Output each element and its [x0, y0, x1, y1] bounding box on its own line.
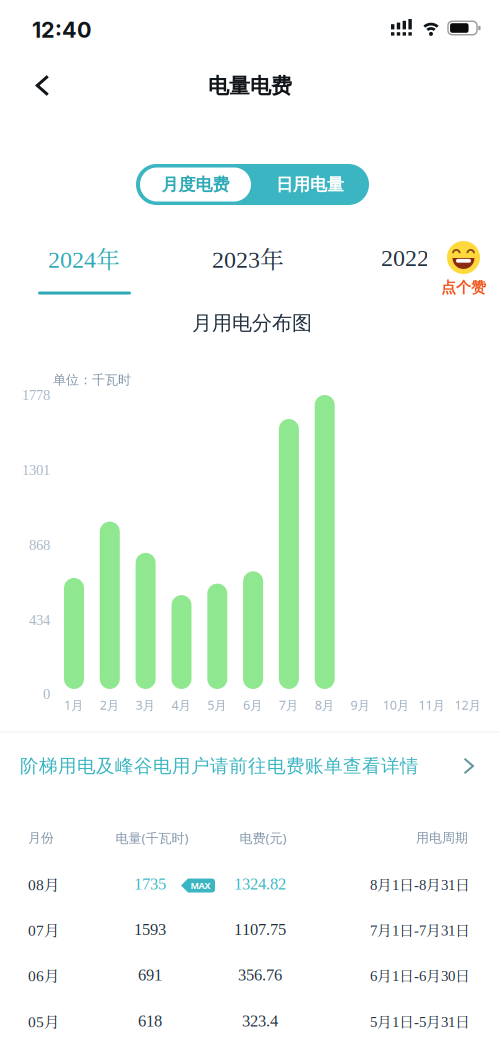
staticText: 5月1日-5月31日 — [370, 1010, 470, 1032]
staticText: 11月 — [419, 696, 446, 713]
button[interactable]: 阶梯用电及峰谷电用户请前往电费账单查看详情 — [0, 744, 500, 788]
staticText: 08月 — [28, 873, 60, 895]
button[interactable]: 2023年 — [200, 233, 296, 283]
staticText: 1324.82 — [234, 875, 286, 893]
staticText: 3月 — [136, 696, 156, 713]
staticText: 12:40 — [32, 17, 92, 43]
staticText: 618 — [138, 1012, 162, 1030]
button[interactable]: 日用电量 — [252, 164, 368, 205]
staticText: 2024年 — [48, 241, 120, 275]
staticText: 2023年 — [212, 241, 284, 275]
button[interactable]: 2022 — [369, 237, 441, 279]
staticText: 1月 — [64, 696, 84, 713]
staticText: 434 — [29, 612, 50, 628]
staticText: 868 — [29, 537, 50, 553]
staticText: 点个赞 — [441, 278, 486, 297]
staticText: 5月 — [207, 696, 227, 713]
staticText: 月用电分布图 — [192, 310, 312, 336]
staticText: 用电周期 — [416, 830, 468, 846]
button[interactable]: Back — [29, 68, 56, 103]
button[interactable]: 月度电费 — [137, 164, 254, 205]
staticText: 阶梯用电及峰谷电用户请前往电费账单查看详情 — [20, 754, 419, 778]
staticText: 2月 — [100, 696, 120, 713]
staticText: 356.76 — [238, 966, 282, 984]
staticText: 06月 — [28, 964, 60, 986]
staticText: 1593 — [134, 920, 166, 939]
staticText: 0 — [43, 686, 50, 702]
staticText: 电费(元) — [239, 829, 286, 847]
staticText: 月度电费 — [161, 174, 229, 195]
staticText: 07月 — [28, 918, 60, 941]
staticText: 8月 — [315, 696, 335, 713]
staticText: 6月1日-6月30日 — [370, 964, 470, 986]
staticText: 12月 — [454, 696, 481, 713]
button[interactable]: 2024年 — [36, 233, 132, 283]
staticText: 7月1日-7月31日 — [370, 919, 470, 940]
staticText: 月份 — [28, 830, 54, 846]
staticText: 单位：千瓦时 — [53, 372, 131, 388]
staticText: 电量电费 — [208, 73, 292, 99]
staticText: 9月 — [350, 696, 370, 713]
staticText: 691 — [138, 966, 162, 984]
staticText: 2022 — [381, 245, 429, 271]
staticText: 电量(千瓦时) — [115, 829, 188, 847]
staticText: 7月 — [279, 696, 299, 713]
staticText: 323.4 — [242, 1012, 278, 1030]
staticText: MAX — [190, 879, 210, 892]
staticText: 8月1日-8月31日 — [370, 873, 470, 895]
staticText: 4月 — [171, 696, 191, 713]
staticText: 1735 — [134, 875, 166, 893]
staticText: 05月 — [28, 1010, 60, 1032]
staticText: 日用电量 — [276, 174, 344, 195]
staticText: 1301 — [22, 462, 50, 478]
staticText: 6月 — [243, 696, 263, 713]
staticText: 10月 — [383, 696, 410, 713]
staticText: 1107.75 — [234, 920, 286, 939]
staticText: 1778 — [22, 387, 50, 403]
